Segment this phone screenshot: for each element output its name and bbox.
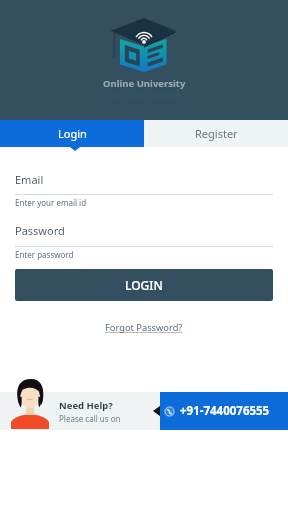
button[interactable]: LOGIN [15,269,273,301]
staticText: Email [15,172,44,187]
button[interactable]: Forgot Password? [105,321,183,334]
button[interactable]: Login [0,120,144,147]
staticText: +91-7440076555 [180,403,270,419]
other: Call [164,406,175,417]
staticText: Login [58,126,87,141]
staticText: Password [15,223,65,238]
staticText: Enter your email id [15,197,87,208]
button[interactable]: Register [144,120,288,147]
staticText: Register [195,126,238,141]
staticText: Enter password [15,249,74,260]
staticText: LEARN FROM ANYWHERE [107,92,181,99]
staticText: Need Help? [59,399,113,412]
button[interactable]: Call [160,392,288,430]
staticText: Online University [103,77,186,90]
staticText: Please call us on [59,413,121,424]
staticText: LOGIN [125,277,163,293]
